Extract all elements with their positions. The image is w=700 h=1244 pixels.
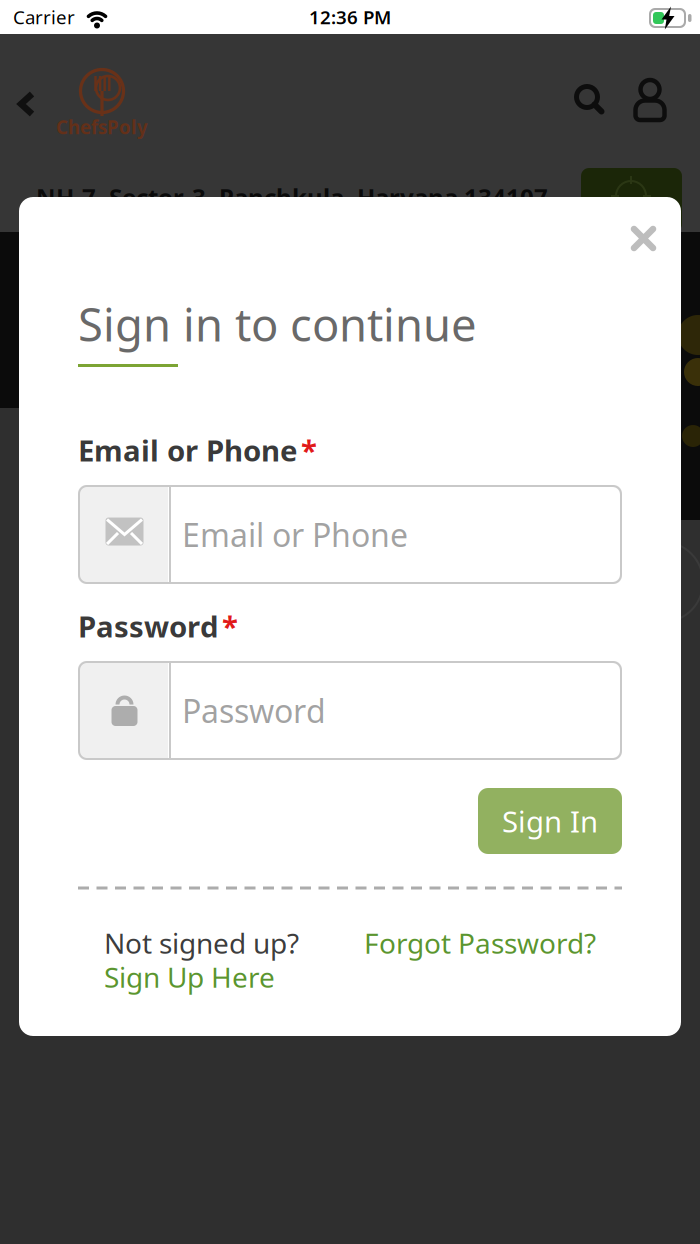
staticText: * xyxy=(301,430,317,469)
button[interactable]: ChefsPoly xyxy=(61,61,143,141)
button[interactable]: Email or Phone xyxy=(78,485,622,584)
staticText: Sign Up Here xyxy=(104,958,275,996)
staticText: Password xyxy=(78,606,219,645)
staticText: Not signed up? xyxy=(104,924,299,962)
staticText: Forgot Password? xyxy=(364,924,596,962)
staticText: Email or Phone xyxy=(78,430,298,469)
staticText: Email or Phone xyxy=(182,513,408,556)
staticText: * xyxy=(222,606,238,645)
staticText: NH-7, Sector-3, Panchkula, Haryana 13410… xyxy=(36,181,548,213)
button[interactable]: Sign Up Here xyxy=(104,962,404,992)
staticText: Sign In xyxy=(502,801,598,840)
staticText: Password xyxy=(182,689,326,732)
button[interactable]: Use current location xyxy=(581,168,682,232)
button[interactable]: Back xyxy=(18,92,42,116)
staticText: Carrier xyxy=(13,5,75,29)
staticText: Sign in to continue xyxy=(78,294,477,354)
button[interactable]: Password xyxy=(78,661,622,760)
button[interactable]: Sign In xyxy=(478,788,622,854)
button[interactable]: Forgot Password? xyxy=(296,928,596,958)
button[interactable]: Search xyxy=(574,84,605,115)
staticText: 12:36 PM xyxy=(309,5,391,29)
button[interactable]: Account xyxy=(633,80,667,122)
button[interactable]: Close xyxy=(631,226,656,251)
staticText: ChefsPoly xyxy=(56,115,148,139)
